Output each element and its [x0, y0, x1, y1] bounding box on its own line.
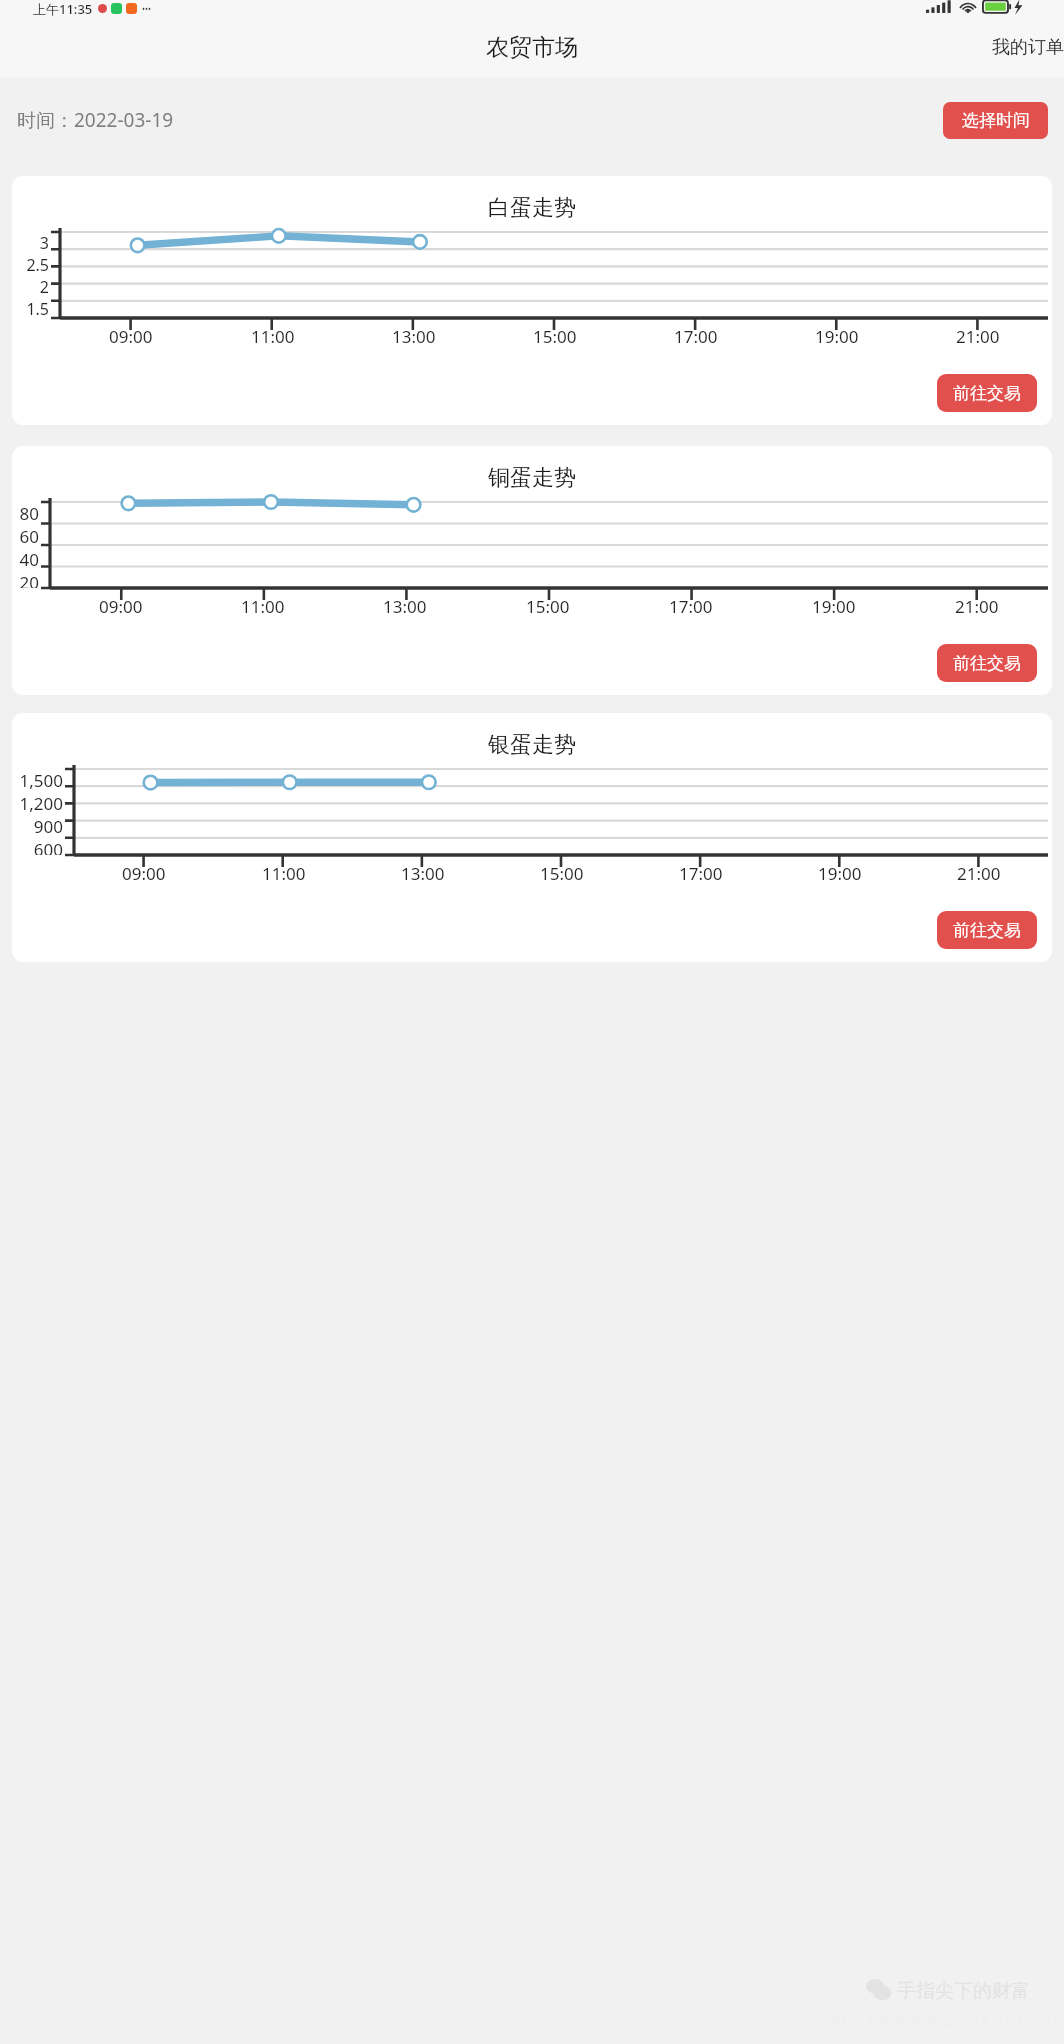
staticText: 60	[19, 525, 39, 548]
staticText: 手指尖下的财富	[897, 1979, 1030, 2003]
staticText: 前往交易	[953, 653, 1021, 674]
staticText: 15:00	[533, 325, 577, 348]
staticText: 40	[19, 548, 39, 571]
staticText: 17:00	[674, 325, 718, 348]
staticText: 13:00	[392, 325, 436, 348]
staticText: 11:00	[241, 595, 285, 618]
other: WeChat	[866, 1978, 892, 2004]
staticText: •••	[142, 3, 152, 14]
staticText: 11:00	[251, 325, 295, 348]
staticText: 13:00	[401, 862, 445, 885]
staticText: 15:00	[540, 862, 584, 885]
staticText: 09:00	[109, 325, 153, 348]
button[interactable]: 前往交易	[937, 911, 1037, 949]
staticText: 前往交易	[953, 383, 1021, 404]
staticText: 上午11:35	[33, 0, 93, 17]
staticText: 1,200	[19, 792, 63, 815]
staticText: 900	[33, 815, 63, 838]
staticText: 19:00	[818, 862, 862, 885]
staticText: 13:00	[383, 595, 427, 618]
staticText: 19:00	[812, 595, 856, 618]
staticText: 铜蛋走势	[12, 464, 1052, 492]
staticText: 21:00	[955, 595, 999, 618]
staticText: 2	[39, 276, 49, 298]
staticText: 21:00	[957, 862, 1001, 885]
staticText: 农贸市场	[486, 33, 578, 62]
staticText: 11:00	[262, 862, 306, 885]
staticText: 20	[19, 571, 39, 588]
staticText: 09:00	[122, 862, 166, 885]
staticText: 时间：2022-03-19	[17, 107, 174, 133]
staticText: 21:00	[956, 325, 1000, 348]
staticText: 15:00	[526, 595, 570, 618]
staticText: 19:00	[815, 325, 859, 348]
staticText: 1.5	[26, 298, 49, 318]
staticText: 1,500	[19, 769, 63, 792]
button[interactable]: 选择时间	[943, 102, 1048, 139]
staticText: 17:00	[669, 595, 713, 618]
staticText: 银蛋走势	[12, 731, 1052, 759]
staticText: 白蛋走势	[12, 194, 1052, 222]
button[interactable]: 前往交易	[937, 644, 1037, 682]
button[interactable]: 前往交易	[937, 374, 1037, 412]
button[interactable]: 我的订单	[992, 36, 1064, 59]
staticText: 我的订单	[992, 36, 1064, 59]
staticText: 80	[19, 502, 39, 525]
staticText: 前往交易	[953, 920, 1021, 941]
staticText: 17:00	[679, 862, 723, 885]
staticText: 09:00	[99, 595, 143, 618]
staticText: 选择时间	[962, 110, 1030, 131]
staticText: 3	[39, 232, 49, 254]
staticText: 600	[33, 838, 63, 855]
staticText: 2.5	[26, 254, 49, 276]
